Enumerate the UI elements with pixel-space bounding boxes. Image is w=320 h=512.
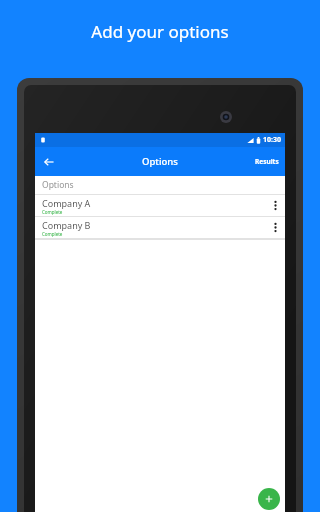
button[interactable]: Results	[255, 147, 279, 176]
button[interactable]: More options	[265, 217, 285, 238]
button[interactable]: Back	[35, 147, 63, 176]
button[interactable]: Company A	[35, 195, 285, 216]
staticText: Options	[42, 179, 74, 191]
staticText: Company A	[42, 197, 91, 209]
staticText: Add your options	[0, 20, 320, 43]
staticText: Company B	[42, 219, 91, 231]
staticText: Results	[255, 157, 279, 166]
button[interactable]: Add option	[258, 488, 280, 510]
button[interactable]: Company B	[35, 217, 285, 238]
staticText: Complete	[42, 231, 63, 237]
staticText: 10:30	[263, 135, 281, 145]
button[interactable]: More options	[265, 195, 285, 216]
staticText: Complete	[42, 209, 63, 215]
staticText: Options	[142, 155, 178, 168]
